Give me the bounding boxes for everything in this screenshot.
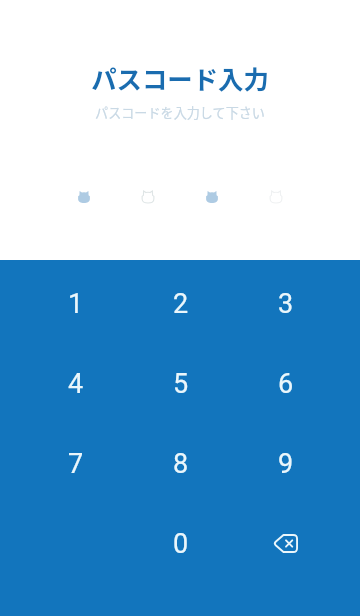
staticText: 6	[278, 368, 294, 400]
button[interactable]: 5	[128, 344, 233, 424]
button[interactable]: 1	[23, 264, 128, 344]
staticText: 2	[173, 288, 189, 320]
button[interactable]: 8	[128, 424, 233, 504]
staticText: 9	[278, 448, 294, 480]
button[interactable]: 9	[233, 424, 338, 504]
button[interactable]: 0	[128, 504, 233, 584]
button[interactable]: 6	[233, 344, 338, 424]
staticText: 1	[68, 288, 84, 320]
button[interactable]: 2	[128, 264, 233, 344]
staticText: 0	[173, 528, 189, 560]
button[interactable]: 3	[233, 264, 338, 344]
staticText: 7	[68, 448, 84, 480]
other: Backspace	[273, 534, 298, 553]
staticText: パスコードを入力して下さい	[95, 103, 265, 122]
staticText: 8	[173, 448, 189, 480]
button[interactable]: 7	[23, 424, 128, 504]
staticText: パスコード入力	[91, 60, 269, 97]
button[interactable]: 4	[23, 344, 128, 424]
staticText: 4	[68, 368, 84, 400]
button[interactable]: Backspace	[233, 504, 338, 584]
staticText: 5	[173, 368, 189, 400]
staticText: 3	[278, 288, 294, 320]
